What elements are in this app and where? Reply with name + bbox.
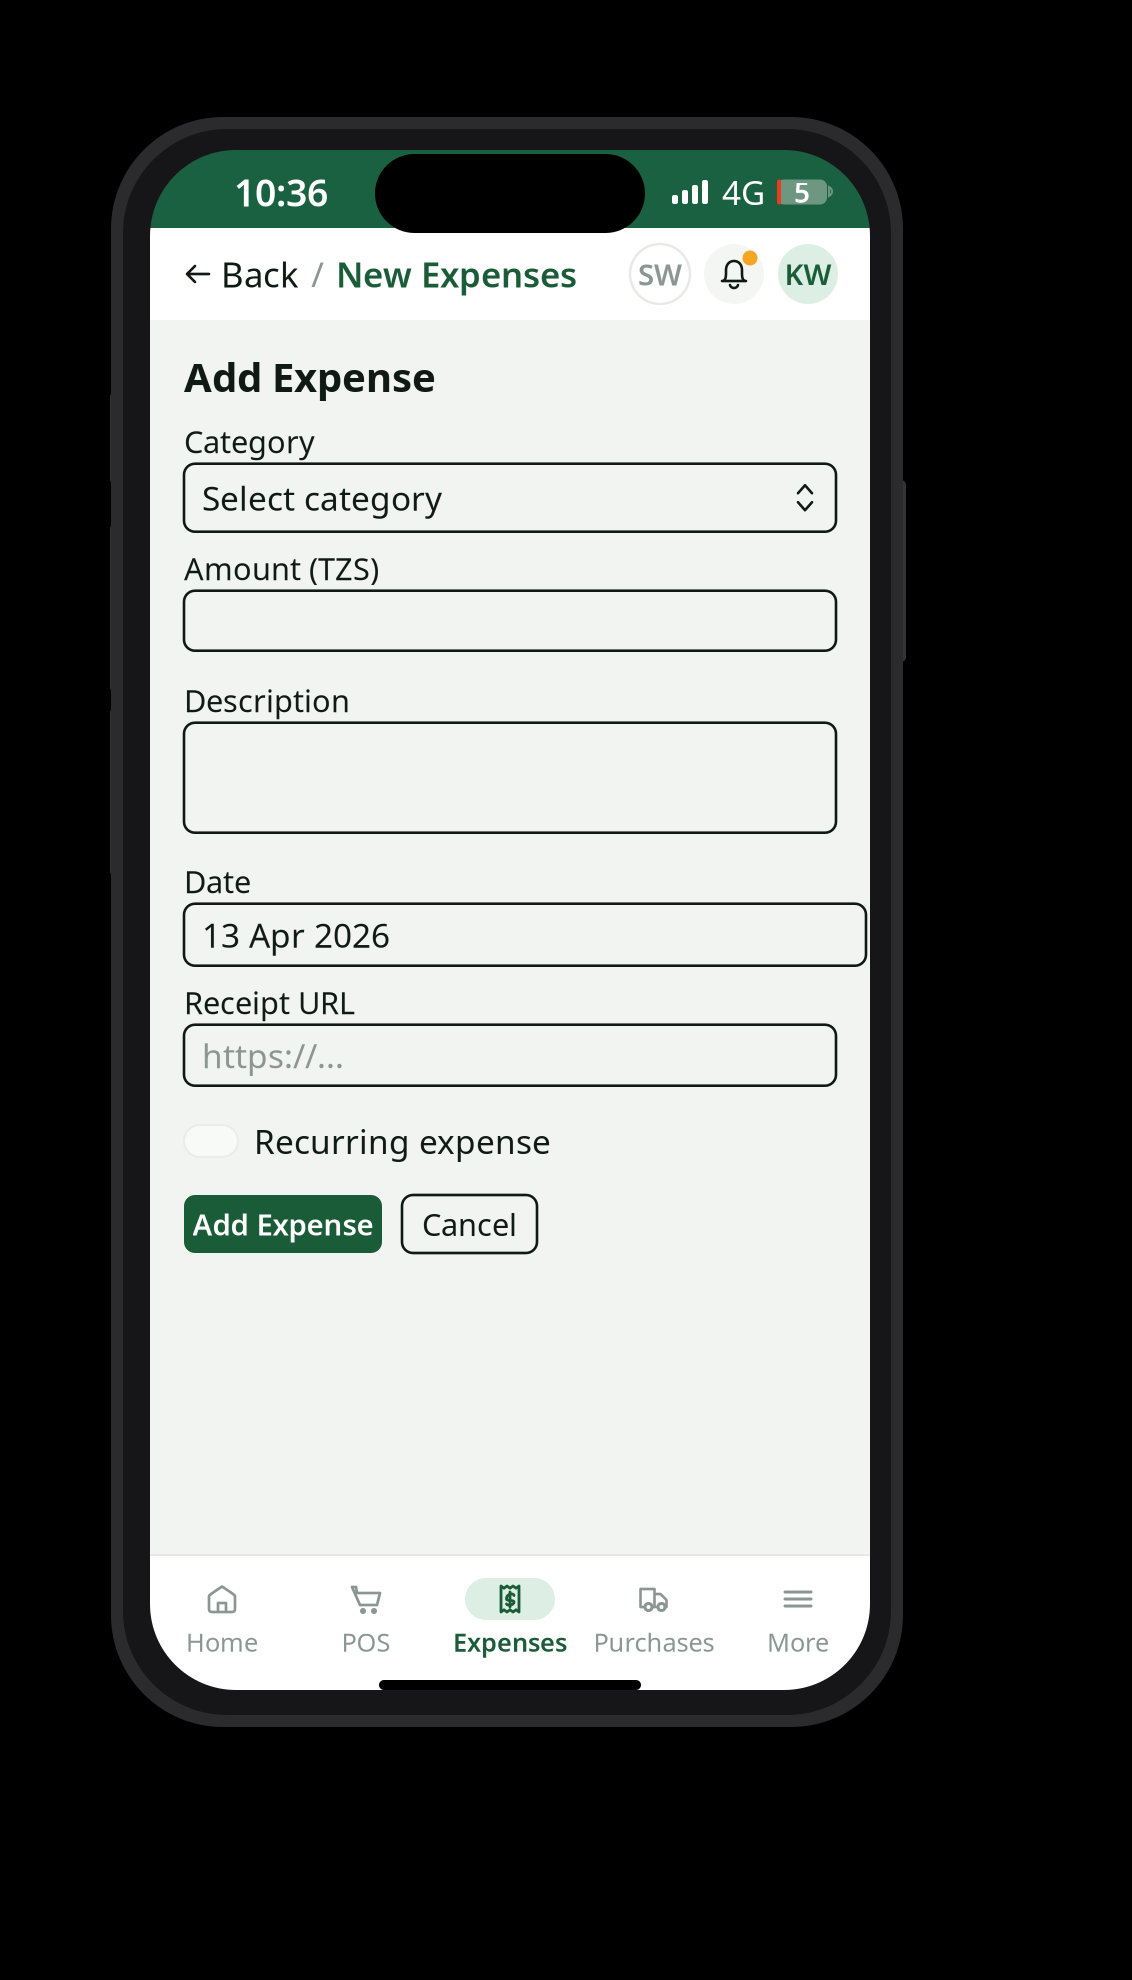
staticText: Back (221, 251, 299, 297)
button[interactable]: Expenses (438, 1578, 582, 1656)
staticText: https://... (202, 1033, 344, 1077)
staticText: Purchases (593, 1625, 714, 1659)
staticText: Date (184, 861, 251, 902)
staticText: 4G (722, 170, 765, 214)
button[interactable]: Add Expense (184, 1195, 382, 1253)
button[interactable]: Recurring expense (184, 1123, 551, 1159)
staticText: Cancel (422, 1204, 517, 1244)
button[interactable]: Purchases (582, 1578, 726, 1656)
staticText: 10:36 (234, 167, 328, 217)
staticText: More (767, 1625, 829, 1659)
staticText: KW (784, 254, 831, 293)
staticText: Select category (202, 476, 442, 520)
button[interactable]: Profile (778, 244, 838, 304)
staticText: / (311, 251, 324, 297)
staticText: Add Expense (192, 1204, 373, 1243)
button[interactable]: POS (294, 1578, 438, 1656)
button[interactable]: Back (150, 251, 299, 297)
staticText: Category (184, 421, 315, 462)
staticText: POS (341, 1625, 390, 1659)
button[interactable]: Switch workspace (630, 244, 690, 304)
button[interactable]: Home (150, 1578, 294, 1656)
button[interactable]: New Expenses (324, 251, 577, 297)
staticText: Recurring expense (254, 1119, 551, 1163)
staticText: New Expenses (336, 251, 577, 297)
staticText: 13 Apr 2026 (202, 913, 390, 957)
button[interactable]: More (726, 1578, 870, 1656)
staticText: Description (184, 680, 350, 721)
staticText: Home (186, 1625, 258, 1659)
button[interactable]: Cancel (402, 1195, 537, 1253)
staticText: Receipt URL (184, 982, 355, 1023)
staticText: 5 (794, 173, 810, 211)
staticText: Amount (TZS) (184, 548, 379, 589)
staticText: SW (638, 254, 682, 293)
button[interactable]: Notifications (704, 244, 764, 304)
staticText: Expenses (453, 1625, 567, 1659)
staticText: Add Expense (184, 350, 436, 403)
